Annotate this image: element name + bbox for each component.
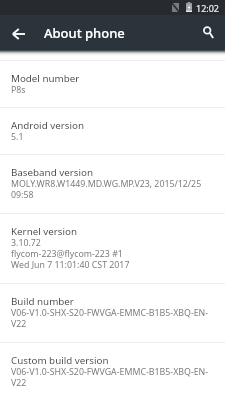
other: Battery charging [186, 2, 192, 12]
staticText: Android version [11, 118, 84, 131]
staticText: Kernel version [11, 224, 78, 237]
button[interactable]: Kernel version [0, 214, 225, 283]
button[interactable]: Android version [0, 108, 225, 154]
staticText: Model number [11, 71, 80, 84]
button[interactable]: Model number [0, 61, 225, 107]
staticText: 3.10.72 flycom-223@flycom-223 #1 Wed Jun… [11, 237, 130, 269]
staticText: P8s [11, 84, 26, 93]
button[interactable]: Baseband version [0, 155, 225, 213]
button[interactable]: Build number [0, 284, 225, 342]
button[interactable]: Navigate up [0, 15, 36, 50]
staticText: 5.1 [11, 131, 24, 140]
staticText: V06-V1.0-SHX-S20-FWVGA-EMMC-B1B5-XBQ-EN-… [11, 366, 209, 386]
staticText: V06-V1.0-SHX-S20-FWVGA-EMMC-B1B5-XBQ-EN-… [11, 307, 209, 328]
button[interactable]: Custom build version [0, 343, 225, 400]
staticText: About phone [44, 24, 125, 42]
staticText: Baseband version [11, 165, 93, 178]
staticText: MOLY.WR8.W1449.MD.WG.MP.V23, 2015/12/25 … [11, 178, 202, 199]
other: No signal [172, 3, 179, 12]
staticText: Custom build version [11, 353, 109, 366]
staticText: Build number [11, 294, 74, 307]
staticText: 12:02 [196, 2, 220, 14]
button[interactable]: Search [195, 15, 221, 50]
